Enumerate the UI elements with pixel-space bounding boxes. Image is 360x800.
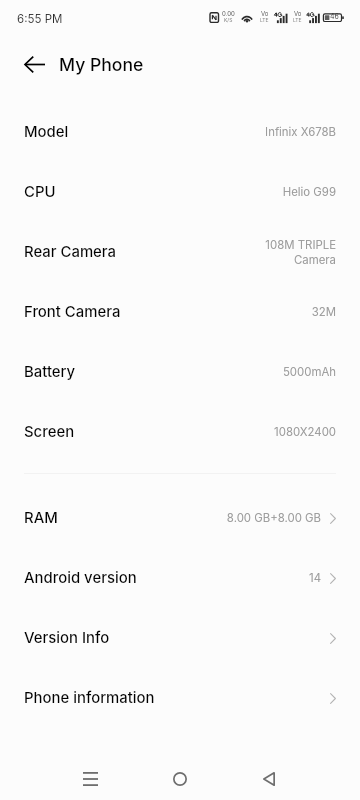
staticText: 14	[309, 571, 321, 585]
staticText: Helio G99	[282, 185, 336, 199]
staticText: Battery	[24, 363, 76, 381]
button[interactable]: RAM	[0, 488, 360, 548]
staticText: LTE	[260, 17, 269, 23]
button[interactable]: Home	[156, 758, 204, 800]
button[interactable]: Back	[18, 48, 50, 80]
staticText: Front Camera	[24, 303, 121, 321]
staticText: 108M TRIPLE Camera	[259, 238, 336, 267]
staticText: 5000mAh	[282, 365, 336, 379]
staticText: 8.00 GB+8.00 GB	[226, 511, 321, 525]
staticText: 32M	[311, 305, 336, 319]
button[interactable]: CPU	[0, 162, 360, 222]
staticText: 46	[330, 12, 339, 20]
staticText: Vo	[261, 10, 269, 17]
staticText: 1080X2400	[274, 425, 336, 439]
staticText: Screen	[24, 423, 75, 441]
button[interactable]: Recent apps	[66, 758, 114, 800]
staticText: CPU	[24, 183, 56, 201]
staticText: LTE	[293, 17, 302, 23]
staticText: 6:55 PM	[17, 12, 63, 26]
staticText: Infinix X678B	[265, 125, 336, 139]
staticText: Android version	[24, 569, 137, 587]
staticText: RAM	[24, 509, 58, 527]
staticText: Phone information	[24, 689, 155, 707]
staticText: Vo	[294, 10, 302, 17]
button[interactable]: Screen	[0, 402, 360, 462]
staticText: 0.00	[222, 10, 235, 17]
staticText: Model	[24, 123, 69, 141]
button[interactable]: Model	[0, 102, 360, 162]
staticText: K/S	[224, 17, 233, 23]
button[interactable]: Version Info	[0, 608, 360, 668]
button[interactable]: Android version	[0, 548, 360, 608]
staticText: Rear Camera	[24, 243, 117, 261]
button[interactable]: Rear Camera	[0, 222, 360, 282]
button[interactable]: Battery	[0, 342, 360, 402]
staticText: Version Info	[24, 629, 110, 647]
staticText: My Phone	[59, 54, 144, 75]
button[interactable]: Front Camera	[0, 282, 360, 342]
button[interactable]: Back	[245, 758, 293, 800]
button[interactable]: Phone information	[0, 668, 360, 728]
